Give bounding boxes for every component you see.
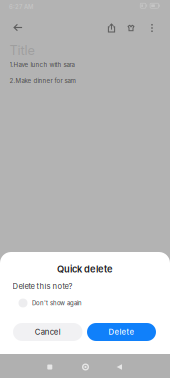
button[interactable]: Don't show again xyxy=(18,297,82,308)
button[interactable]: Back xyxy=(107,355,131,378)
staticText: Quick delete xyxy=(57,263,113,275)
staticText: Don't show again xyxy=(32,299,82,307)
button[interactable]: More options xyxy=(142,17,162,39)
button[interactable]: Back xyxy=(7,16,29,38)
button[interactable]: Share xyxy=(101,17,121,39)
button[interactable]: Delete xyxy=(87,323,156,341)
staticText: 1.Have lunch with sara xyxy=(9,61,74,68)
button[interactable]: Cancel xyxy=(13,323,82,341)
button[interactable]: Tags xyxy=(121,17,141,39)
staticText: Delete xyxy=(108,327,134,337)
button[interactable]: Recent apps xyxy=(38,355,62,378)
button[interactable]: Home xyxy=(73,355,97,378)
staticText: Delete this note? xyxy=(12,281,72,291)
staticText: Cancel xyxy=(35,327,61,337)
staticText: 2.Make dinner for sam xyxy=(9,77,75,84)
staticText: Title xyxy=(9,42,34,58)
staticText: 6:27 AM xyxy=(9,3,33,10)
